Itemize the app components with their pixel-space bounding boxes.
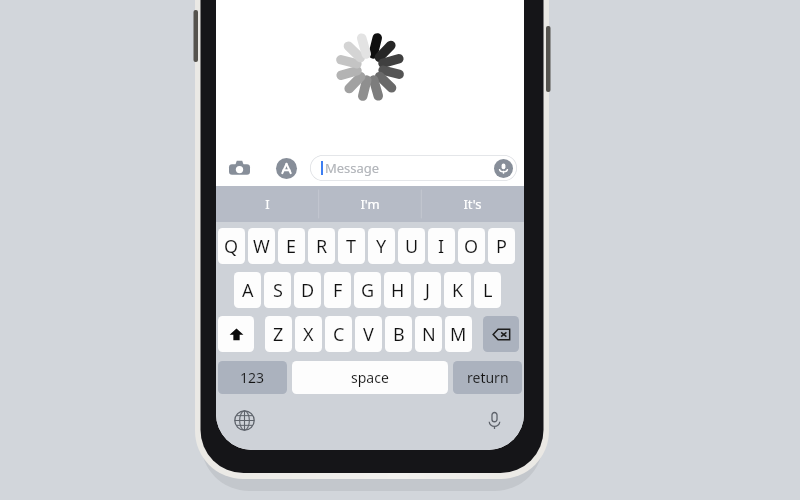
- staticText: N: [422, 322, 436, 347]
- staticText: R: [316, 234, 328, 259]
- button[interactable]: C: [325, 316, 352, 352]
- button[interactable]: I'm: [318, 186, 421, 222]
- button[interactable]: Message: [310, 155, 517, 181]
- button[interactable]: Dictation: [479, 405, 509, 435]
- staticText: X: [303, 322, 314, 347]
- staticText: I: [265, 195, 270, 213]
- button[interactable]: Dictate: [493, 158, 514, 179]
- staticText: return: [467, 368, 509, 387]
- button[interactable]: Q: [218, 228, 245, 264]
- staticText: O: [464, 234, 479, 259]
- staticText: It's: [463, 195, 482, 213]
- button[interactable]: G: [354, 272, 381, 308]
- button[interactable]: P: [488, 228, 515, 264]
- staticText: Message: [325, 159, 380, 177]
- button[interactable]: Z: [265, 316, 292, 352]
- button[interactable]: return: [453, 361, 522, 394]
- staticText: Q: [224, 234, 239, 259]
- button[interactable]: X: [295, 316, 322, 352]
- button[interactable]: Camera: [224, 153, 254, 183]
- button[interactable]: V: [355, 316, 382, 352]
- button[interactable]: App Store: [271, 153, 301, 183]
- button[interactable]: W: [248, 228, 275, 264]
- button[interactable]: D: [294, 272, 321, 308]
- staticText: Z: [273, 322, 284, 347]
- staticText: 123: [240, 368, 265, 387]
- button[interactable]: L: [474, 272, 501, 308]
- staticText: V: [363, 322, 374, 347]
- staticText: S: [273, 278, 283, 303]
- button[interactable]: I: [216, 186, 318, 222]
- staticText: Y: [376, 234, 387, 259]
- staticText: C: [333, 322, 345, 347]
- button[interactable]: I: [428, 228, 455, 264]
- staticText: L: [483, 278, 493, 303]
- staticText: D: [301, 278, 315, 303]
- button[interactable]: space: [292, 361, 448, 394]
- button[interactable]: 123: [218, 361, 287, 394]
- staticText: J: [425, 278, 430, 303]
- button[interactable]: N: [415, 316, 442, 352]
- staticText: A: [242, 278, 254, 303]
- staticText: B: [393, 322, 405, 347]
- staticText: I'm: [360, 195, 380, 213]
- button[interactable]: T: [338, 228, 365, 264]
- button[interactable]: O: [458, 228, 485, 264]
- staticText: W: [253, 234, 270, 259]
- button[interactable]: K: [444, 272, 471, 308]
- staticText: space: [351, 368, 389, 387]
- button[interactable]: Shift: [218, 316, 254, 352]
- staticText: M: [450, 322, 467, 347]
- button[interactable]: M: [445, 316, 472, 352]
- staticText: H: [391, 278, 405, 303]
- staticText: P: [496, 234, 507, 259]
- staticText: G: [361, 278, 375, 303]
- staticText: I: [438, 234, 445, 259]
- button[interactable]: U: [398, 228, 425, 264]
- button[interactable]: Y: [368, 228, 395, 264]
- button[interactable]: A: [234, 272, 261, 308]
- button[interactable]: S: [264, 272, 291, 308]
- button[interactable]: R: [308, 228, 335, 264]
- button[interactable]: E: [278, 228, 305, 264]
- button[interactable]: B: [385, 316, 412, 352]
- button[interactable]: F: [324, 272, 351, 308]
- staticText: U: [405, 234, 419, 259]
- button[interactable]: Switch keyboard: [229, 405, 259, 435]
- button[interactable]: J: [414, 272, 441, 308]
- staticText: K: [452, 278, 464, 303]
- button[interactable]: It's: [421, 186, 524, 222]
- staticText: E: [286, 234, 297, 259]
- staticText: F: [333, 278, 343, 303]
- button[interactable]: Backspace: [483, 316, 519, 352]
- button[interactable]: H: [384, 272, 411, 308]
- staticText: T: [346, 234, 357, 259]
